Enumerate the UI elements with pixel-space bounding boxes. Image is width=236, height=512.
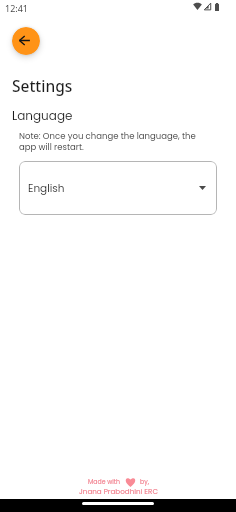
- staticText: English: [28, 181, 65, 196]
- staticText: Note: Once you change the language, the …: [19, 130, 196, 153]
- button[interactable]: English: [19, 161, 217, 215]
- staticText: Settings: [12, 75, 73, 96]
- button[interactable]: Back: [12, 27, 40, 55]
- staticText: Language: [12, 107, 73, 124]
- staticText: 12:41: [5, 2, 29, 14]
- staticText: Made with: [88, 477, 120, 486]
- staticText: Jnana Prabodhini ERC: [79, 486, 158, 496]
- staticText: by,: [140, 477, 149, 486]
